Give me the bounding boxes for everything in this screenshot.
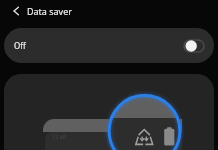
staticText: 12 kB [52, 133, 67, 140]
staticText: Data saver [27, 5, 72, 17]
button[interactable]: Back [6, 1, 26, 21]
button[interactable]: Off [4, 28, 214, 63]
staticText: Off [14, 40, 26, 51]
